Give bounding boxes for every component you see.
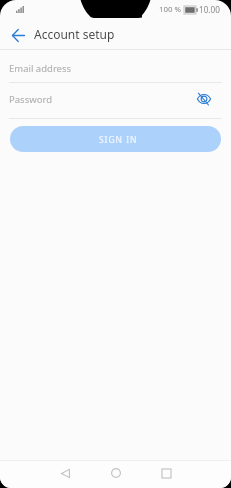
staticText: SIGN IN [99, 134, 138, 146]
staticText: 100 % [159, 4, 182, 15]
staticText: Email address [9, 62, 72, 75]
button[interactable]: Home [99, 459, 133, 487]
button[interactable]: Back [48, 459, 82, 487]
staticText: Password [9, 93, 52, 106]
button[interactable]: Back [0, 18, 32, 50]
button[interactable]: SIGN IN [10, 126, 221, 152]
button[interactable]: Toggle password visibility [192, 87, 216, 111]
button[interactable]: Email address [9, 50, 222, 82]
button[interactable]: Password [9, 83, 222, 118]
staticText: 10.00 [199, 4, 220, 15]
button[interactable]: Recent apps [149, 459, 183, 487]
staticText: Account setup [34, 26, 115, 42]
